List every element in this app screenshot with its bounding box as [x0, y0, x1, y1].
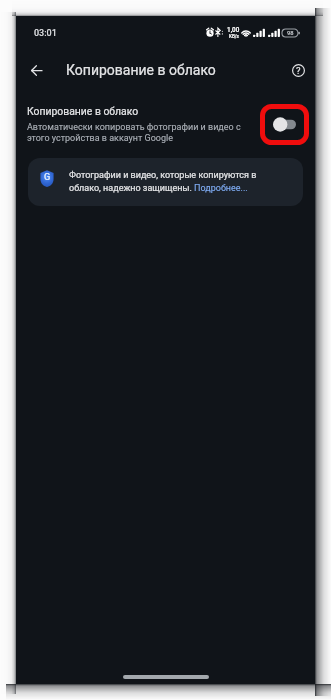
button[interactable]: Копирование в облако [16, 91, 315, 153]
staticText: 98 [287, 30, 294, 37]
button[interactable]: G [28, 158, 303, 206]
staticText: Автоматически копировать фотографии и ви… [27, 122, 254, 144]
staticText: 03:01 [34, 28, 57, 39]
staticText: Фотографии и видео, которые копируются в… [69, 170, 259, 193]
staticText: Копирование в облако [66, 62, 216, 78]
staticText: G [44, 171, 51, 182]
button[interactable]: Back [23, 56, 51, 84]
button[interactable]: Help [284, 56, 312, 84]
staticText: 1,00 [227, 26, 240, 34]
staticText: ? [296, 65, 301, 76]
button[interactable]: Toggle cloud backup off [273, 117, 296, 132]
staticText: KB/s [229, 34, 239, 39]
staticText: Копирование в облако [27, 105, 139, 117]
